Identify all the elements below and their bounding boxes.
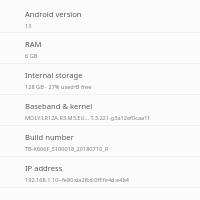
- button[interactable]: IP address: [0, 157, 200, 187]
- staticText: TB-X606F_S100018_20180710_R: [25, 145, 109, 153]
- staticText: 192.168.1.10--fe80:da28:d:0ff:fe4d:e4b4: [25, 176, 130, 184]
- staticText: IP address: [25, 163, 63, 173]
- staticText: 128 GB - 27% used•B free: [25, 83, 92, 91]
- staticText: Internal storage: [25, 70, 83, 80]
- staticText: 6 GB: [25, 52, 38, 60]
- staticText: Build number: [25, 132, 74, 142]
- button[interactable]: Android version: [0, 8, 200, 32]
- staticText: 13: [25, 22, 32, 30]
- button[interactable]: Baseband & kernel: [0, 95, 200, 125]
- staticText: MOLY.LR12A.R3.M3.EU... T.3.221-g3a12ef0c…: [25, 114, 150, 122]
- staticText: Baseband & kernel: [25, 101, 93, 111]
- button[interactable]: Internal storage: [0, 64, 200, 94]
- button[interactable]: Build number: [0, 126, 200, 156]
- button[interactable]: RAM: [0, 33, 200, 63]
- staticText: RAM: [25, 39, 42, 49]
- staticText: Android version: [25, 9, 82, 19]
